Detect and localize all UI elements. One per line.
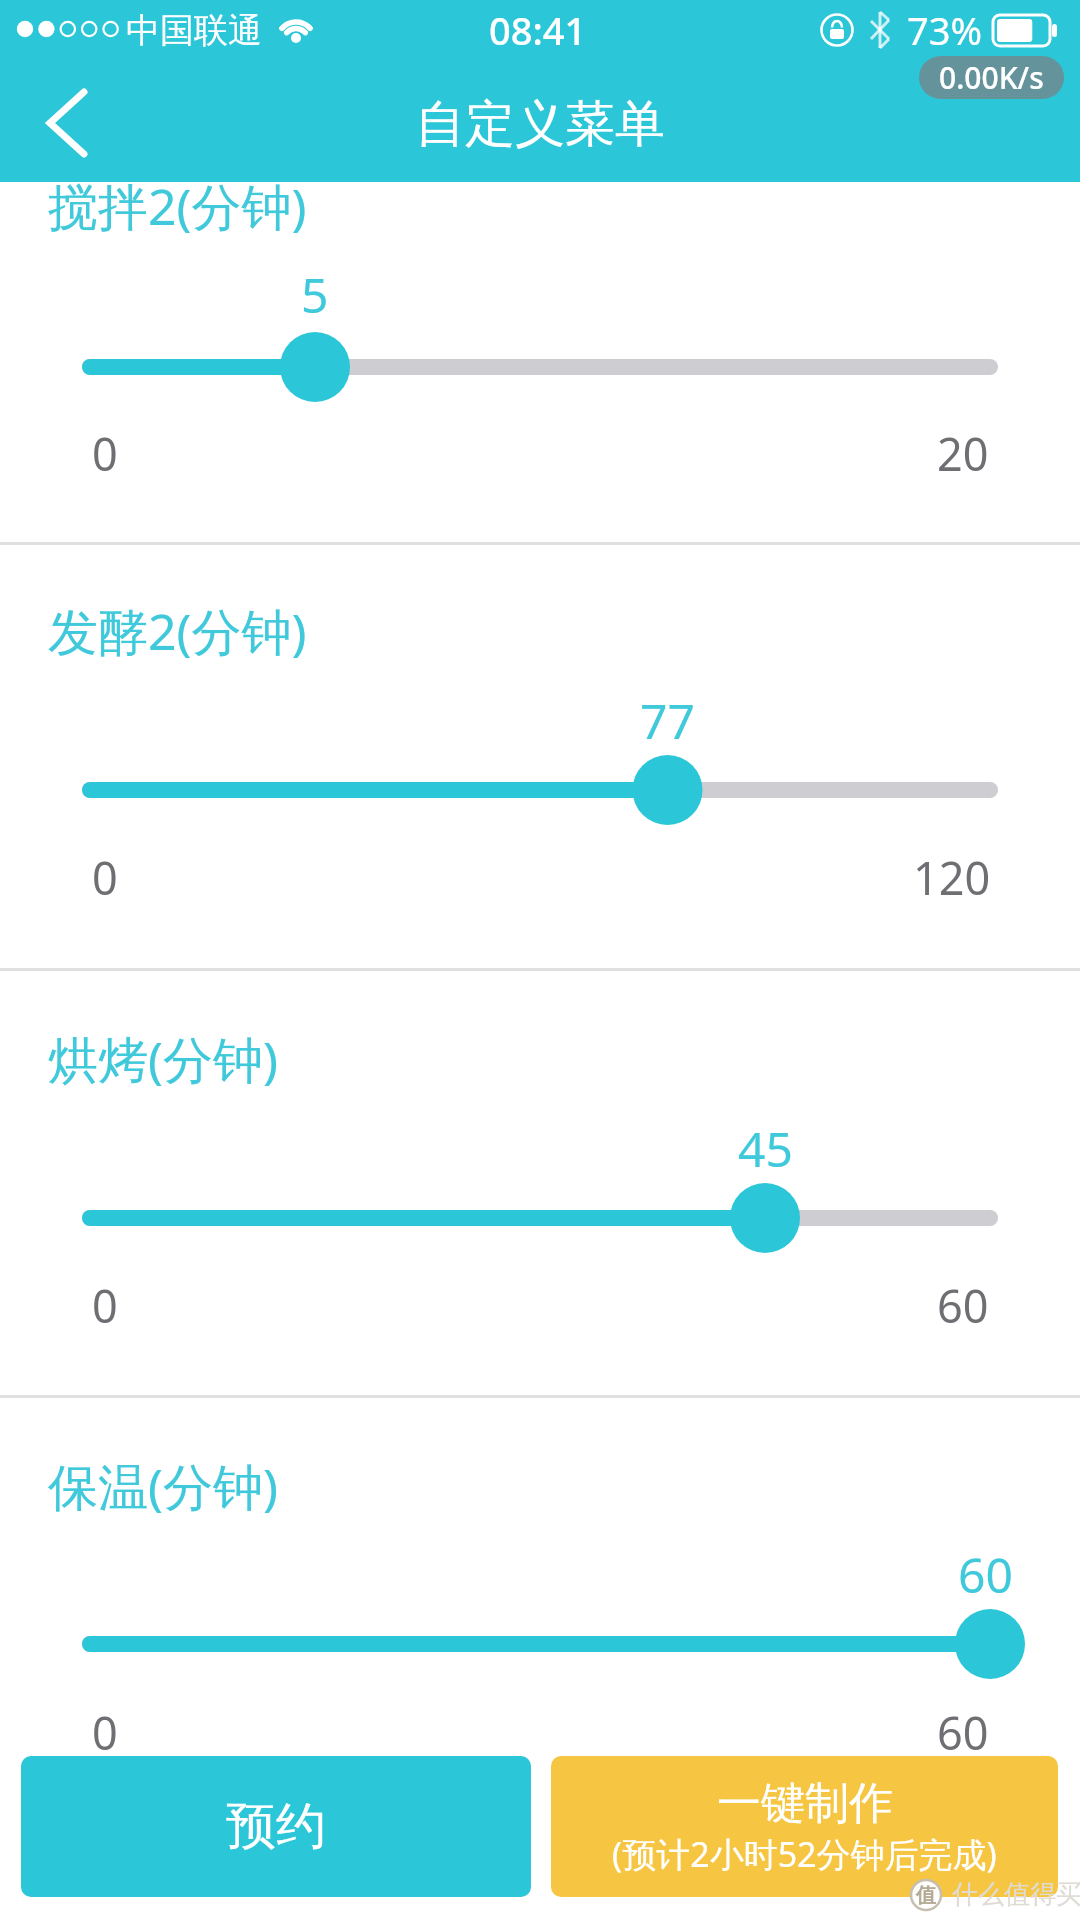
staticText: 120 xyxy=(913,847,991,908)
staticText: 保温(分钟) xyxy=(48,1452,278,1520)
staticText: 77 xyxy=(640,688,695,753)
staticText: 0 xyxy=(92,1275,118,1336)
staticText: 08:41 xyxy=(489,4,587,56)
staticText: (预计2小时52分钟后完成) xyxy=(612,1831,997,1877)
staticText: 60 xyxy=(937,1275,989,1336)
staticText: 预约 xyxy=(226,1795,326,1858)
button[interactable]: 一键制作 xyxy=(551,1756,1058,1897)
staticText: 搅拌2(分钟) xyxy=(48,172,307,240)
staticText: 一键制作 xyxy=(717,1776,893,1831)
staticText: 值 xyxy=(916,1883,936,1908)
staticText: 烘烤(分钟) xyxy=(48,1025,278,1093)
button[interactable] xyxy=(25,75,120,170)
staticText: 5 xyxy=(301,262,329,327)
staticText: 0 xyxy=(92,847,118,908)
staticText: 什么值得买 xyxy=(952,1878,1080,1911)
button[interactable]: 预约 xyxy=(21,1756,531,1897)
staticText: 45 xyxy=(738,1116,793,1181)
staticText: 自定义菜单 xyxy=(415,93,665,156)
staticText: 20 xyxy=(937,423,989,484)
staticText: 73% xyxy=(907,4,983,56)
staticText: 60 xyxy=(937,1702,989,1763)
staticText: 0.00K/s xyxy=(939,57,1044,98)
staticText: 发酵2(分钟) xyxy=(48,597,307,665)
staticText: 0 xyxy=(92,1702,118,1763)
staticText: 60 xyxy=(958,1542,1013,1607)
staticText: 中国联通 xyxy=(126,9,262,52)
staticText: 0 xyxy=(92,423,118,484)
